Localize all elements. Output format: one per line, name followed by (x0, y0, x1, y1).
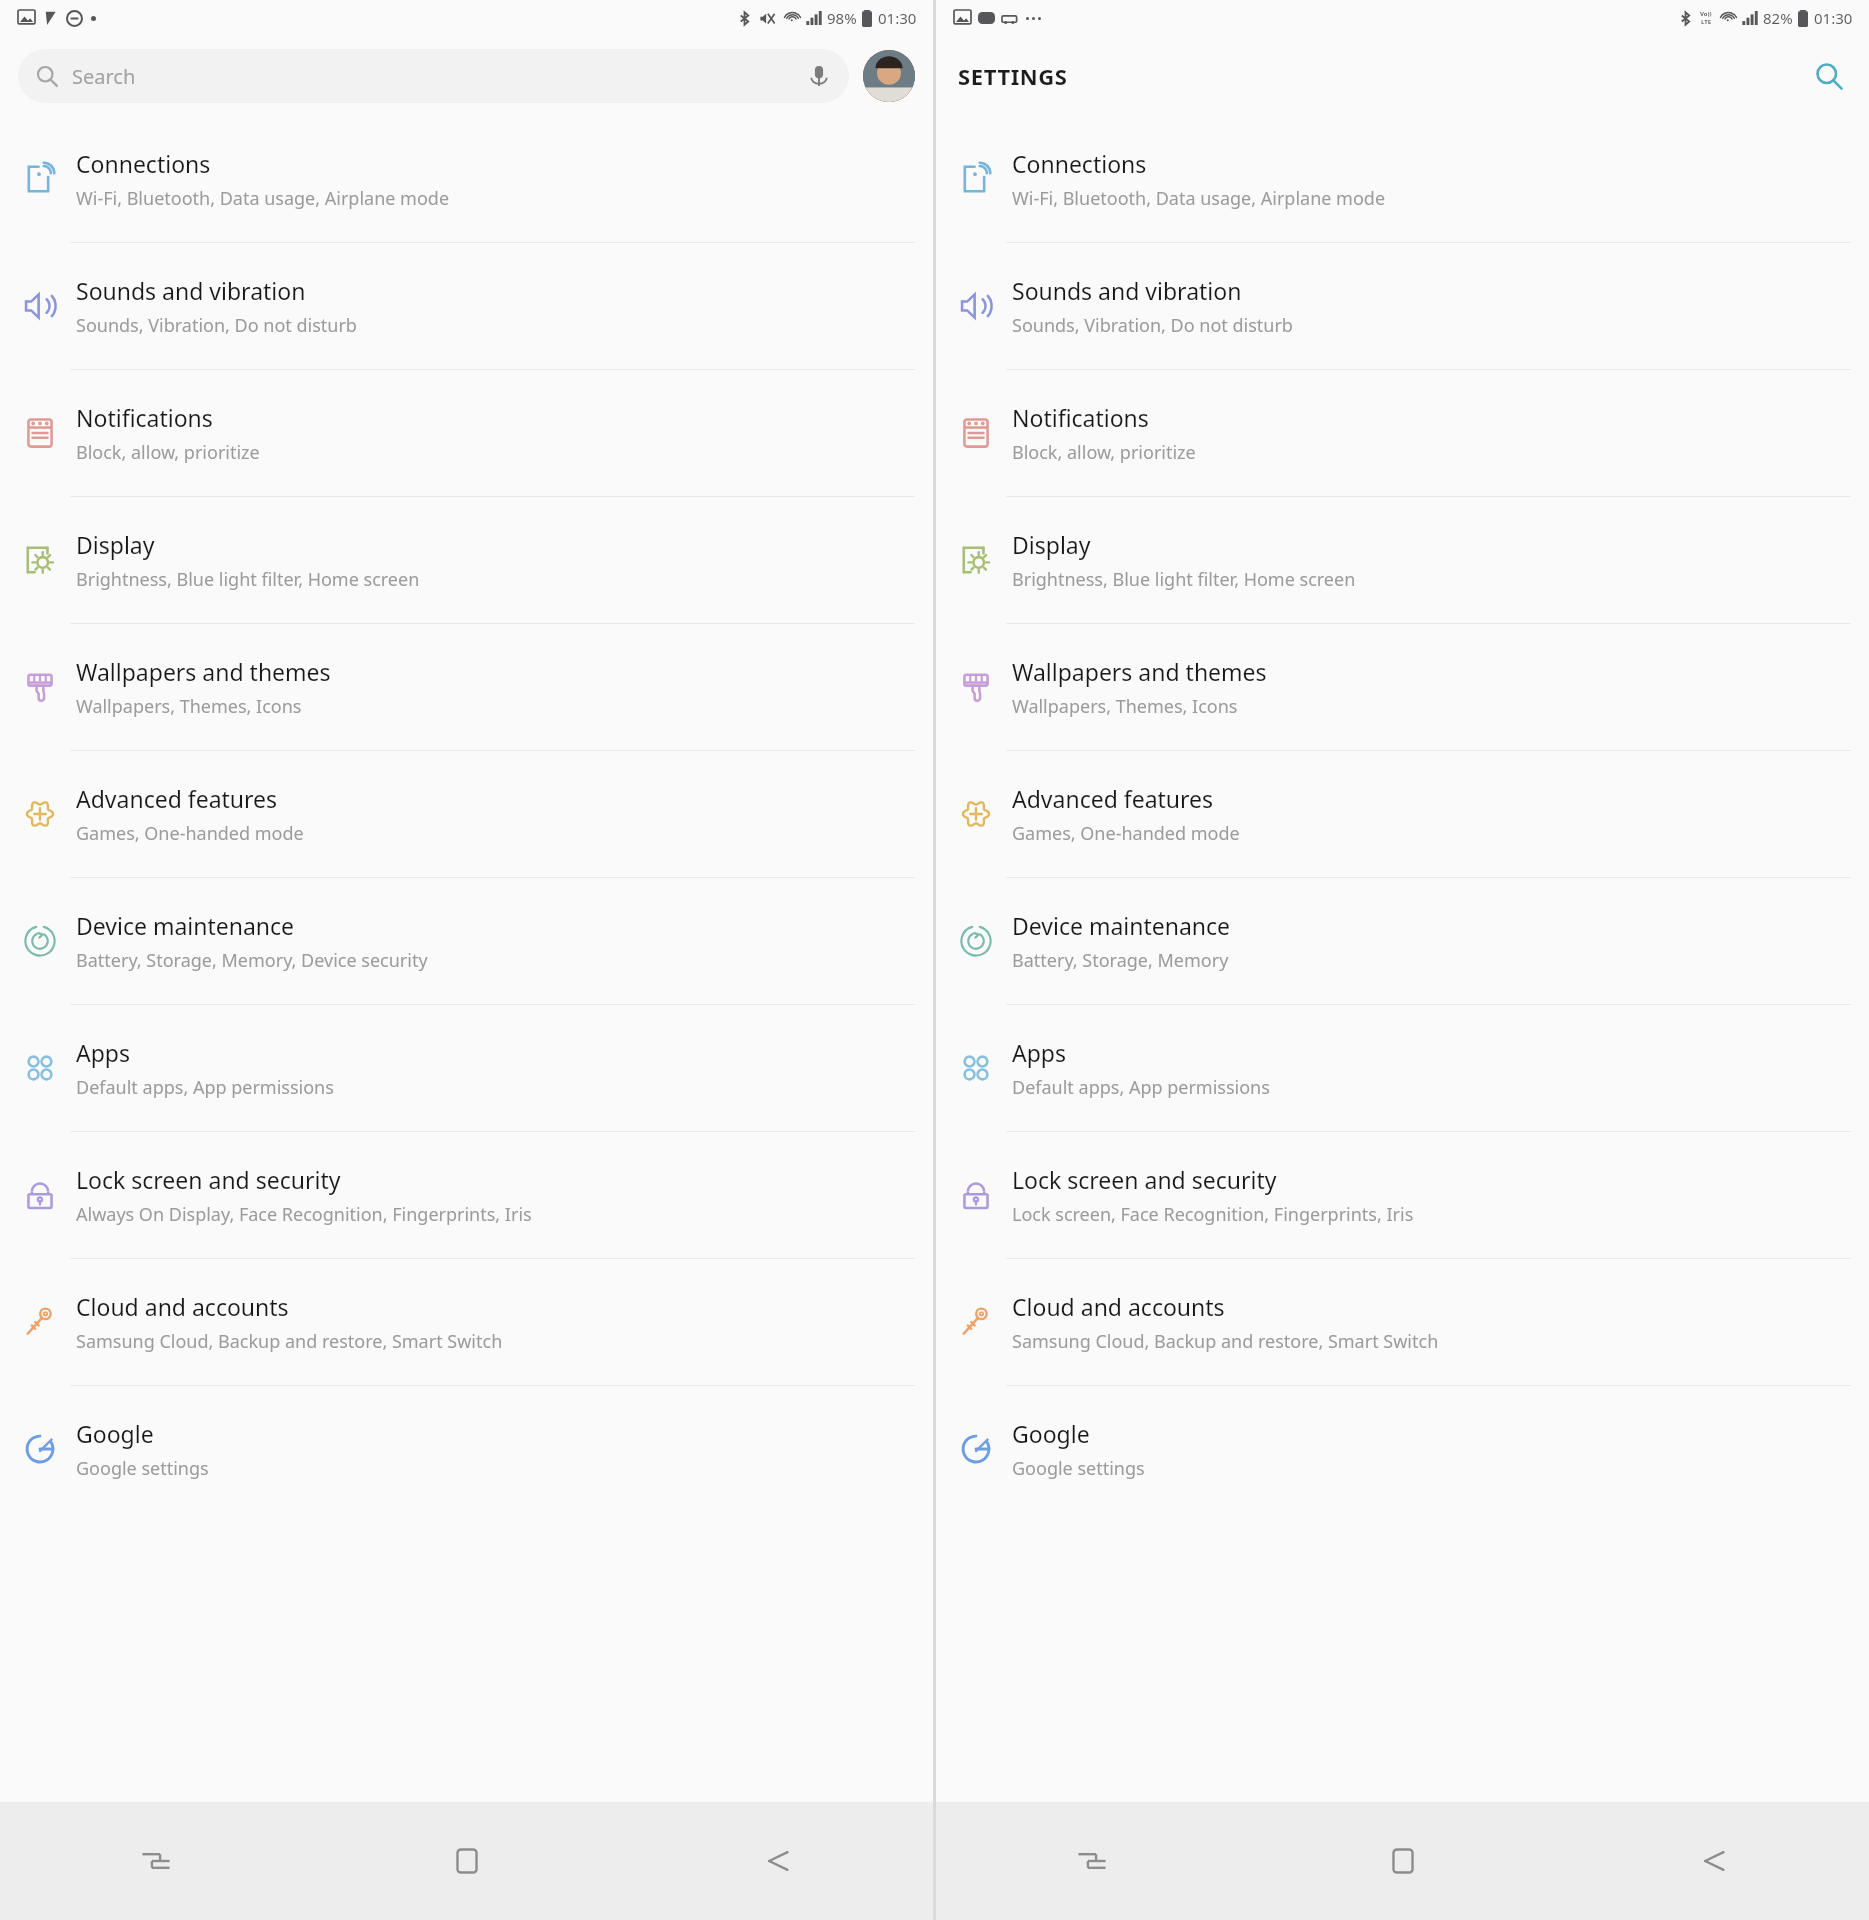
staticText: Wi-Fi, Bluetooth, Data usage, Airplane m… (76, 186, 450, 211)
staticText: Notifications (1012, 402, 1149, 433)
button[interactable]: Sounds and vibration (0, 243, 933, 369)
staticText: Samsung Cloud, Backup and restore, Smart… (76, 1329, 503, 1354)
staticText: Samsung Cloud, Backup and restore, Smart… (1012, 1329, 1439, 1354)
button[interactable]: Notifications (936, 370, 1869, 496)
staticText: Connections (76, 148, 211, 179)
staticText: Lock screen, Face Recognition, Fingerpri… (1012, 1202, 1414, 1227)
button[interactable]: Advanced features (936, 751, 1869, 877)
button[interactable]: Back (622, 1802, 933, 1920)
staticText: Wi-Fi, Bluetooth, Data usage, Airplane m… (1012, 186, 1386, 211)
button[interactable]: Connections (936, 116, 1869, 242)
button[interactable]: Google (0, 1386, 933, 1512)
staticText: Wallpapers and themes (1012, 656, 1267, 687)
staticText: LTE (1701, 18, 1712, 26)
staticText: Block, allow, prioritize (1012, 440, 1196, 465)
staticText: Default apps, App permissions (1012, 1075, 1270, 1100)
staticText: Games, One-handed mode (76, 821, 304, 846)
button[interactable]: Wallpapers and themes (936, 624, 1869, 750)
staticText: Sounds, Vibration, Do not disturb (1012, 313, 1293, 338)
button[interactable]: Back (1558, 1802, 1869, 1920)
staticText: Lock screen and security (76, 1164, 341, 1195)
staticText: Google (1012, 1418, 1090, 1449)
button[interactable]: Cloud and accounts (0, 1259, 933, 1385)
other: Voice search (807, 64, 831, 88)
button[interactable]: Search (1803, 50, 1855, 102)
button[interactable]: Home (1247, 1802, 1558, 1920)
staticText: Apps (76, 1037, 131, 1068)
staticText: Wallpapers, Themes, Icons (76, 694, 302, 719)
staticText: Device maintenance (1012, 910, 1231, 941)
button[interactable]: Apps (0, 1005, 933, 1131)
staticText: Games, One-handed mode (1012, 821, 1240, 846)
staticText: Vo)) (1700, 10, 1712, 18)
button[interactable]: Cloud and accounts (936, 1259, 1869, 1385)
staticText: Sounds and vibration (76, 275, 306, 306)
button[interactable]: Recents (0, 1802, 311, 1920)
button[interactable]: Search (18, 49, 849, 103)
button[interactable]: Display (0, 497, 933, 623)
button[interactable]: Wallpapers and themes (0, 624, 933, 750)
staticText: Default apps, App permissions (76, 1075, 334, 1100)
button[interactable]: Notifications (0, 370, 933, 496)
staticText: Cloud and accounts (76, 1291, 289, 1322)
button[interactable]: Advanced features (0, 751, 933, 877)
staticText: 01:30 (878, 8, 917, 28)
staticText: Sounds and vibration (1012, 275, 1242, 306)
staticText: Display (76, 529, 155, 560)
button[interactable]: Apps (936, 1005, 1869, 1131)
staticText: Brightness, Blue light filter, Home scre… (1012, 567, 1356, 592)
button[interactable]: Lock screen and security (936, 1132, 1869, 1258)
staticText: Device maintenance (76, 910, 295, 941)
staticText: Lock screen and security (1012, 1164, 1277, 1195)
staticText: Block, allow, prioritize (76, 440, 260, 465)
button[interactable]: Lock screen and security (0, 1132, 933, 1258)
staticText: Always On Display, Face Recognition, Fin… (76, 1202, 532, 1227)
staticText: Google settings (1012, 1456, 1145, 1481)
button[interactable]: Device maintenance (936, 878, 1869, 1004)
button[interactable]: Connections (0, 116, 933, 242)
staticText: Cloud and accounts (1012, 1291, 1225, 1322)
button[interactable]: Profile (863, 50, 915, 102)
staticText: 82% (1763, 8, 1793, 28)
staticText: Notifications (76, 402, 213, 433)
staticText: Advanced features (76, 783, 278, 814)
staticText: Advanced features (1012, 783, 1214, 814)
staticText: Connections (1012, 148, 1147, 179)
staticText: Google (76, 1418, 154, 1449)
staticText: Battery, Storage, Memory (1012, 948, 1229, 973)
staticText: Brightness, Blue light filter, Home scre… (76, 567, 420, 592)
staticText: SETTINGS (958, 61, 1068, 91)
staticText: Battery, Storage, Memory, Device securit… (76, 948, 428, 973)
staticText: Wallpapers and themes (76, 656, 331, 687)
staticText: Display (1012, 529, 1091, 560)
staticText: 98% (827, 8, 857, 28)
button[interactable]: Home (311, 1802, 622, 1920)
staticText: Search (72, 63, 807, 90)
staticText: Apps (1012, 1037, 1067, 1068)
staticText: Wallpapers, Themes, Icons (1012, 694, 1238, 719)
button[interactable]: Recents (936, 1802, 1247, 1920)
button[interactable]: Device maintenance (0, 878, 933, 1004)
staticText: Google settings (76, 1456, 209, 1481)
staticText: 01:30 (1814, 8, 1853, 28)
button[interactable]: Display (936, 497, 1869, 623)
staticText: Sounds, Vibration, Do not disturb (76, 313, 357, 338)
button[interactable]: Google (936, 1386, 1869, 1512)
button[interactable]: Sounds and vibration (936, 243, 1869, 369)
